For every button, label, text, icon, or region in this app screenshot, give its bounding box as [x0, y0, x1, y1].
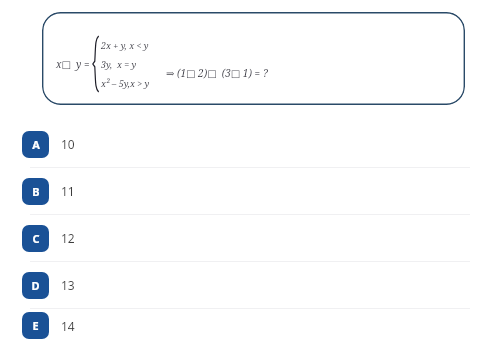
staticText: x□ y =: [56, 57, 90, 71]
staticText: B: [32, 184, 40, 199]
staticText: 2x + y, x < y: [101, 39, 149, 51]
staticText: E: [32, 318, 39, 333]
button[interactable]: E: [0, 309, 500, 342]
staticText: 13: [61, 277, 75, 293]
staticText: 3y, x = y: [101, 58, 137, 70]
button[interactable]: A: [0, 121, 500, 167]
staticText: C: [32, 231, 40, 246]
staticText: 12: [61, 230, 75, 246]
button[interactable]: C: [0, 215, 500, 261]
staticText: A: [32, 137, 40, 152]
staticText: D: [31, 278, 40, 293]
staticText: 11: [61, 183, 75, 199]
staticText: x² – 5y,x > y: [101, 77, 150, 89]
button[interactable]: B: [0, 168, 500, 214]
staticText: ⇒ (1□ 2)□ (3□ 1) = ?: [166, 66, 268, 80]
button[interactable]: D: [0, 262, 500, 308]
staticText: 10: [61, 136, 75, 152]
staticText: 14: [61, 318, 75, 334]
